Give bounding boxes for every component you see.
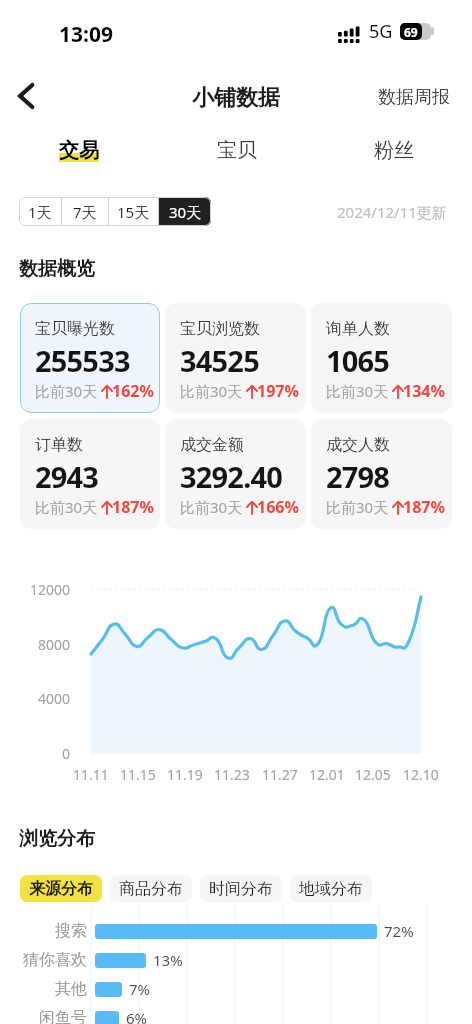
button[interactable]: 7天 [62,197,108,226]
staticText: 12.01 [309,765,345,784]
staticText: 12000 [30,580,71,599]
staticText: 比前30天 [180,497,243,517]
button[interactable]: 数据周报 [374,82,454,113]
staticText: 8000 [38,635,71,654]
button[interactable]: 地域分布 [290,875,372,902]
staticText: 11.19 [167,765,203,784]
staticText: 订单数 [35,435,83,455]
staticText: 1065 [326,341,390,380]
staticText: 比前30天 [35,497,98,517]
staticText: 时间分布 [209,879,273,899]
button[interactable]: 宝贝 [158,138,315,180]
staticText: 4000 [38,689,71,708]
button[interactable]: 粉丝 [315,138,472,180]
staticText: 13% [153,950,183,970]
staticText: 小铺数据 [192,84,280,112]
staticText: 2798 [326,457,390,496]
staticText: 比前30天 [180,381,243,401]
staticText: 11.27 [262,765,298,784]
staticText: 宝贝曝光数 [35,319,115,339]
button[interactable]: 订单数 [20,419,160,529]
staticText: 197% [257,380,299,402]
button[interactable]: 商品分布 [110,875,192,902]
staticText: 11.11 [73,765,109,784]
staticText: 162% [112,380,154,402]
staticText: 12.05 [355,765,391,784]
button[interactable]: 交易 [0,138,158,180]
staticText: 商品分布 [119,879,183,899]
staticText: 11.23 [214,765,250,784]
staticText: 187% [403,496,445,518]
staticText: 5G [369,19,393,44]
staticText: 255533 [35,341,130,380]
button[interactable]: 时间分布 [200,875,282,902]
staticText: 数据概览 [19,257,95,281]
staticText: 其他 [55,979,87,999]
staticText: 3292.40 [180,457,283,496]
button[interactable]: Back [4,74,48,118]
staticText: 地域分布 [299,879,363,899]
staticText: 11.15 [120,765,156,784]
button[interactable]: 宝贝浏览数 [165,303,306,413]
staticText: 30天 [169,202,202,222]
button[interactable]: 询单人数 [311,303,452,413]
button[interactable]: 成交金额 [165,419,306,529]
staticText: 7% [129,979,151,999]
staticText: 比前30天 [326,497,389,517]
staticText: 2024/12/11更新 [337,202,447,222]
button[interactable]: 宝贝曝光数 [20,303,160,413]
staticText: 69 [404,24,418,40]
button[interactable]: 成交人数 [311,419,452,529]
staticText: 询单人数 [326,319,390,339]
staticText: 交易 [59,138,99,163]
staticText: 浏览分布 [19,827,95,851]
staticText: 0 [62,744,71,763]
staticText: 比前30天 [326,381,389,401]
staticText: 7天 [73,202,97,222]
staticText: 1天 [28,202,52,222]
staticText: 2943 [35,457,99,496]
staticText: 34525 [180,341,259,380]
staticText: 宝贝 [217,138,257,163]
staticText: 成交金额 [180,435,244,455]
staticText: 闲鱼号 [39,1008,87,1024]
staticText: 6% [126,1008,148,1024]
button[interactable]: 30天 [159,197,211,226]
staticText: 数据周报 [378,86,450,109]
staticText: 13:09 [59,20,113,49]
staticText: 搜索 [55,921,87,941]
button[interactable]: 来源分布 [20,875,102,902]
staticText: 187% [112,496,154,518]
staticText: 比前30天 [35,381,98,401]
staticText: 15天 [117,202,150,222]
staticText: 来源分布 [29,879,93,899]
staticText: 猜你喜欢 [23,950,87,970]
staticText: 成交人数 [326,435,390,455]
staticText: 134% [403,380,445,402]
staticText: 166% [257,496,299,518]
staticText: 粉丝 [374,138,414,163]
staticText: 72% [384,921,414,941]
staticText: 12.10 [403,765,439,784]
button[interactable]: 1天 [19,197,61,226]
staticText: 宝贝浏览数 [180,319,260,339]
button[interactable]: 15天 [109,197,158,226]
